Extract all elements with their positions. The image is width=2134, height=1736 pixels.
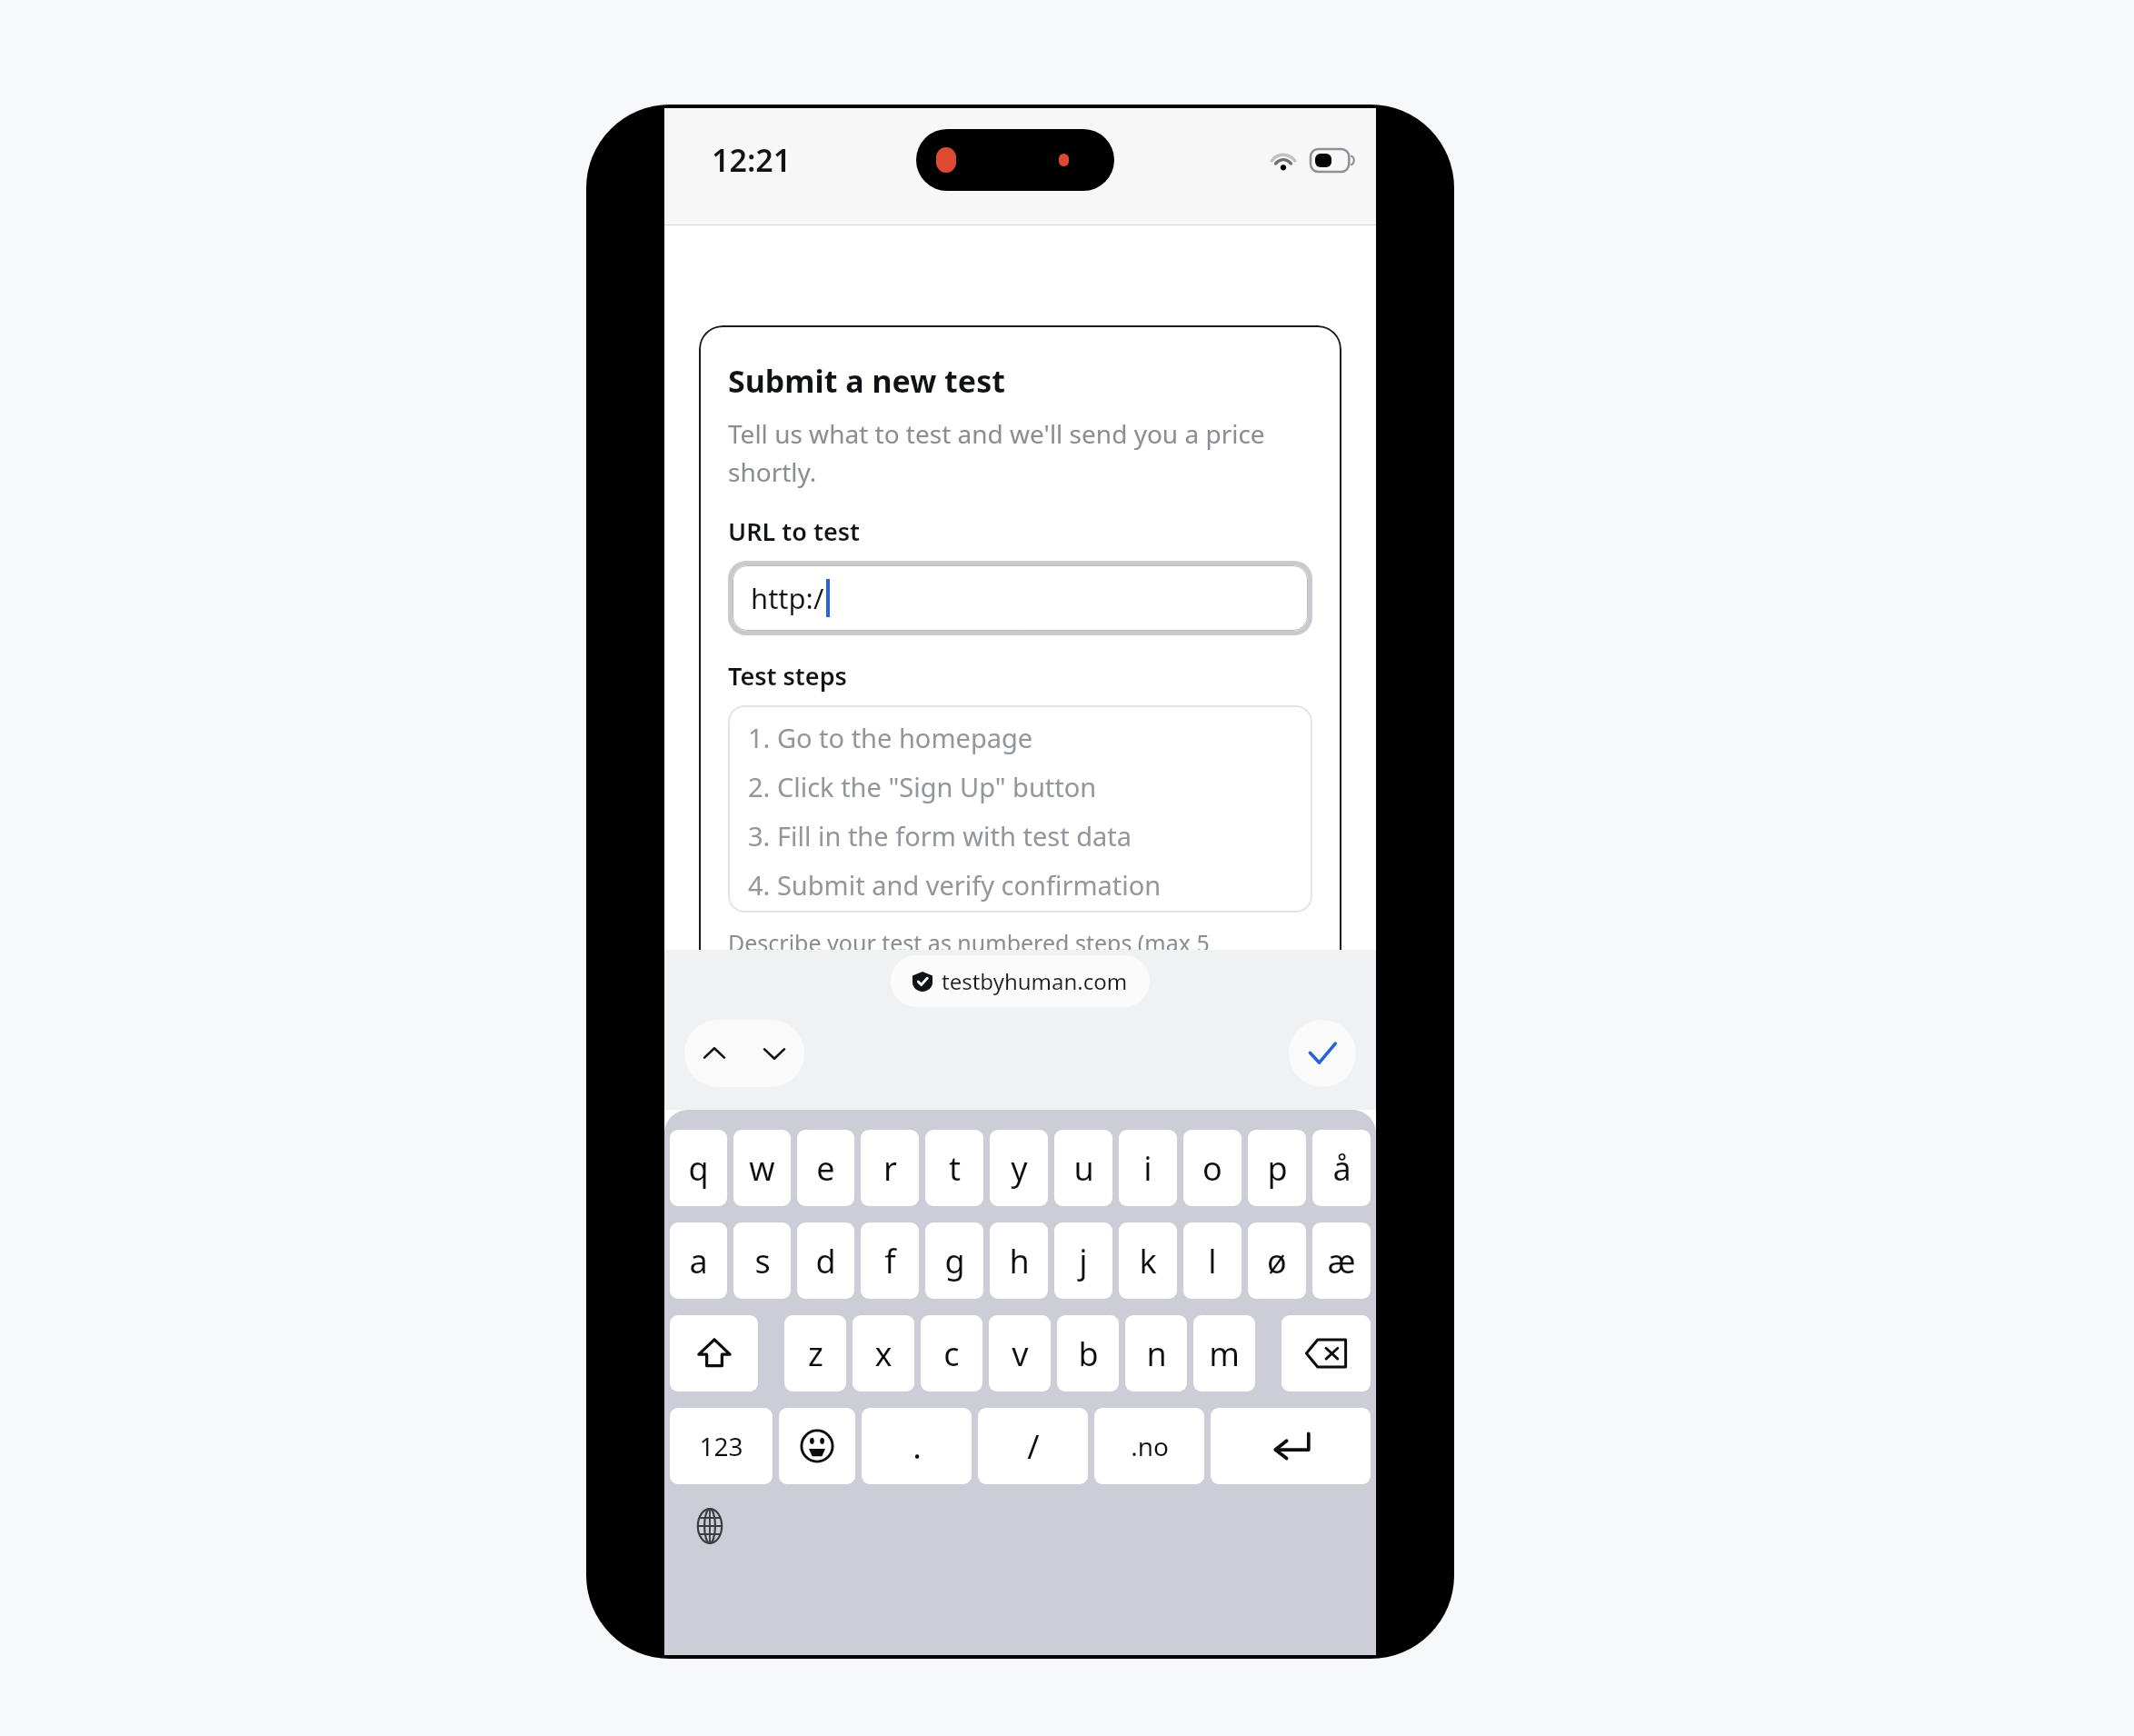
staticText: / (1027, 1424, 1040, 1469)
staticText: . (912, 1424, 922, 1469)
staticText: b (1078, 1332, 1099, 1376)
button[interactable]: v (989, 1315, 1051, 1392)
button[interactable]: Change keyboard (688, 1504, 732, 1548)
staticText: http:/ (751, 579, 824, 617)
button[interactable]: Emoji (779, 1408, 855, 1484)
staticText: Tell us what to test and we'll send you … (728, 416, 1312, 489)
staticText: 1. Go to the homepage (748, 720, 1033, 755)
staticText: s (754, 1239, 771, 1283)
staticText: l (1208, 1239, 1217, 1283)
staticText: o (1202, 1146, 1222, 1191)
button[interactable]: f (861, 1222, 919, 1299)
staticText: r (883, 1146, 897, 1191)
button[interactable]: q (670, 1130, 727, 1206)
button[interactable]: x (853, 1315, 914, 1392)
button[interactable]: å (1312, 1130, 1371, 1206)
staticText: y (1011, 1146, 1028, 1191)
staticText: a (689, 1239, 708, 1283)
staticText: c (943, 1332, 960, 1376)
button[interactable]: Next field (744, 1020, 804, 1087)
button[interactable]: 123 (670, 1408, 773, 1484)
staticText: 4. Submit and verify confirmation (748, 867, 1162, 903)
button[interactable]: æ (1312, 1222, 1371, 1299)
staticText: 3. Fill in the form with test data (748, 818, 1132, 853)
staticText: ø (1267, 1239, 1287, 1283)
staticText: v (1012, 1332, 1029, 1376)
button[interactable]: http:/ (733, 565, 1308, 631)
staticText: n (1146, 1332, 1167, 1376)
button[interactable]: / (978, 1408, 1088, 1484)
button[interactable]: u (1054, 1130, 1112, 1206)
staticText: u (1073, 1146, 1094, 1191)
staticText: Test steps (728, 659, 847, 693)
button[interactable]: . (862, 1408, 972, 1484)
button[interactable]: Return (1211, 1408, 1371, 1484)
staticText: testbyhuman.com (942, 966, 1128, 996)
button[interactable]: g (925, 1222, 983, 1299)
button[interactable]: n (1125, 1315, 1187, 1392)
staticText: t (949, 1146, 961, 1191)
staticText: m (1209, 1332, 1240, 1376)
button[interactable]: c (921, 1315, 982, 1392)
button[interactable]: w (733, 1130, 791, 1206)
button[interactable]: Done (1289, 1020, 1356, 1087)
staticText: x (874, 1332, 892, 1376)
button[interactable]: l (1183, 1222, 1242, 1299)
button[interactable]: y (990, 1130, 1048, 1206)
staticText: w (749, 1146, 775, 1191)
button[interactable]: b (1057, 1315, 1119, 1392)
staticText: URL to test (728, 514, 860, 548)
button[interactable]: i (1119, 1130, 1177, 1206)
button[interactable]: p (1248, 1130, 1306, 1206)
button[interactable]: r (861, 1130, 919, 1206)
staticText: j (1079, 1239, 1088, 1283)
staticText: e (816, 1146, 835, 1191)
button[interactable]: o (1183, 1130, 1242, 1206)
button[interactable]: Previous field (684, 1020, 744, 1087)
staticText: 12:21 (712, 139, 792, 181)
button[interactable]: Shift (670, 1315, 758, 1392)
staticText: q (688, 1146, 709, 1191)
staticText: d (815, 1239, 836, 1283)
button[interactable]: Backspace (1281, 1315, 1371, 1392)
button[interactable]: s (733, 1222, 791, 1299)
staticText: g (944, 1239, 965, 1283)
button[interactable]: ø (1248, 1222, 1306, 1299)
staticText: 123 (699, 1429, 743, 1463)
button[interactable]: a (670, 1222, 727, 1299)
staticText: z (808, 1332, 823, 1376)
button[interactable]: m (1193, 1315, 1255, 1392)
staticText: å (1332, 1146, 1351, 1191)
button[interactable]: t (925, 1130, 983, 1206)
button[interactable]: z (784, 1315, 846, 1392)
button[interactable]: h (990, 1222, 1048, 1299)
button[interactable]: e (797, 1130, 854, 1206)
button[interactable]: d (797, 1222, 854, 1299)
staticText: f (884, 1239, 896, 1283)
staticText: 2. Click the "Sign Up" button (748, 769, 1097, 804)
button[interactable]: 1. Go to the homepage (728, 705, 1312, 913)
staticText: .no (1131, 1429, 1169, 1463)
staticText: i (1143, 1146, 1152, 1191)
staticText: p (1267, 1146, 1288, 1191)
staticText: h (1009, 1239, 1030, 1283)
staticText: Describe your test as numbered steps (ma… (728, 927, 1210, 958)
staticText: k (1139, 1239, 1157, 1283)
button[interactable]: testbyhuman.com (891, 955, 1150, 1007)
button[interactable]: k (1119, 1222, 1177, 1299)
staticText: æ (1327, 1239, 1356, 1283)
button[interactable]: .no (1094, 1408, 1204, 1484)
staticText: Submit a new test (728, 360, 1005, 402)
button[interactable]: j (1054, 1222, 1112, 1299)
